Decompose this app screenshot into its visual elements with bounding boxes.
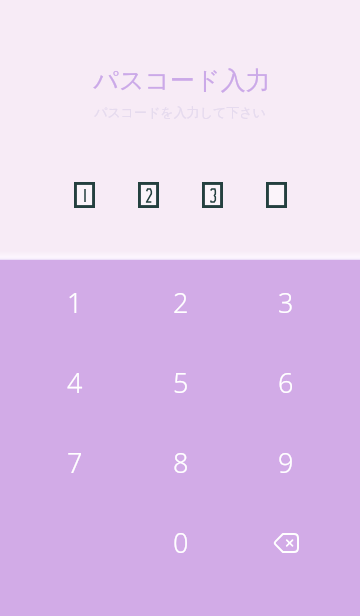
- staticText: パスコード入力: [93, 65, 271, 96]
- staticText: 7: [67, 444, 83, 481]
- other: Passcode digit 1: [74, 182, 95, 208]
- button[interactable]: 4: [22, 342, 128, 422]
- staticText: 3: [278, 284, 294, 321]
- button[interactable]: 8: [128, 422, 233, 502]
- other: Backspace: [273, 533, 299, 553]
- staticText: 4: [67, 364, 83, 401]
- other: Passcode digit 3: [202, 182, 223, 208]
- button[interactable]: 9: [233, 422, 338, 502]
- staticText: パスコードを入力して下さい: [94, 104, 266, 120]
- button[interactable]: 0: [128, 502, 233, 582]
- other: Passcode digit 2: [138, 182, 159, 208]
- other: Empty passcode digit: [266, 182, 287, 208]
- button[interactable]: 2: [128, 262, 233, 342]
- staticText: 2: [173, 284, 189, 321]
- button[interactable]: 6: [233, 342, 338, 422]
- staticText: 0: [173, 524, 189, 561]
- button[interactable]: 1: [22, 262, 128, 342]
- staticText: 5: [173, 364, 189, 401]
- button[interactable]: 3: [233, 262, 338, 342]
- button[interactable]: 5: [128, 342, 233, 422]
- staticText: 9: [278, 444, 294, 481]
- staticText: 1: [67, 284, 83, 321]
- button[interactable]: 7: [22, 422, 128, 502]
- staticText: 6: [278, 364, 294, 401]
- button[interactable]: Backspace: [233, 502, 338, 582]
- staticText: 8: [173, 444, 189, 481]
